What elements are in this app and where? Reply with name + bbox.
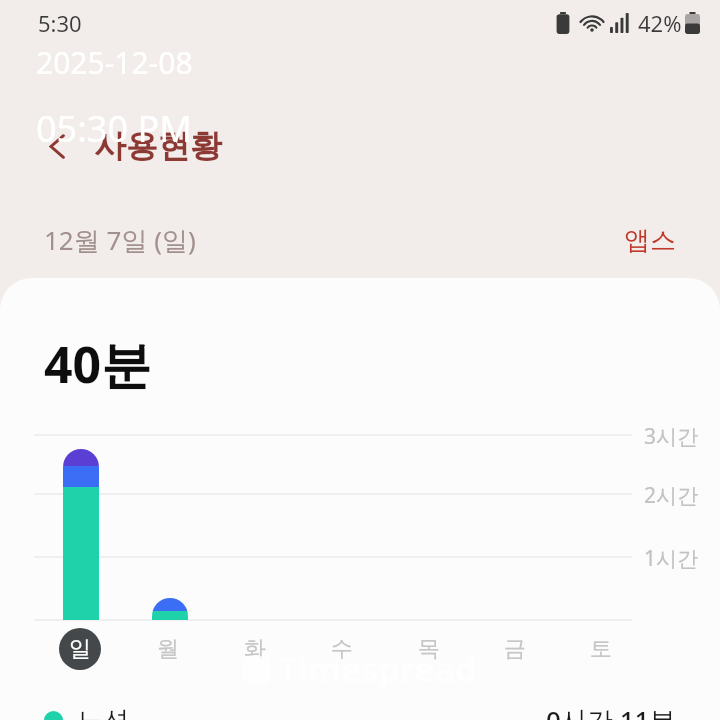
button[interactable]: 월 (147, 628, 189, 670)
staticText: 12월 7일 (일) (44, 222, 196, 258)
staticText: 42% (638, 8, 682, 38)
button[interactable]: Back (28, 117, 86, 175)
staticText: 목 (418, 635, 440, 663)
staticText: 3시간 (644, 422, 699, 451)
button[interactable]: 수 (321, 628, 363, 670)
button[interactable]: 목 (408, 628, 450, 670)
staticText: 토 (590, 635, 612, 663)
button[interactable]: 12월 7일 (일) (44, 222, 196, 258)
button[interactable]: 앱스 (624, 224, 676, 257)
staticText: 05:30 PM (36, 104, 192, 153)
staticText: 사용현황 (94, 126, 222, 166)
staticText: 월 (157, 635, 179, 663)
staticText: 0시간 11분 (546, 702, 676, 720)
button[interactable]: 토 (580, 628, 622, 670)
staticText: Timespread (278, 646, 477, 692)
button[interactable]: 금 (494, 628, 536, 670)
staticText: 일 (69, 635, 91, 663)
staticText: 수 (331, 635, 353, 663)
staticText: 금 (504, 635, 526, 663)
staticText: 화 (244, 635, 266, 663)
staticText: 2시간 (644, 481, 699, 510)
button[interactable]: 화 (234, 628, 276, 670)
staticText: 노션 (77, 704, 129, 720)
staticText: 40분 (44, 330, 152, 398)
staticText: 2025-12-08 (36, 42, 193, 83)
staticText: 앱스 (624, 224, 676, 257)
button[interactable]: 일 (59, 628, 101, 670)
button[interactable]: 노션 (44, 702, 676, 720)
staticText: 5:30 (38, 8, 82, 38)
staticText: 1시간 (644, 544, 699, 573)
